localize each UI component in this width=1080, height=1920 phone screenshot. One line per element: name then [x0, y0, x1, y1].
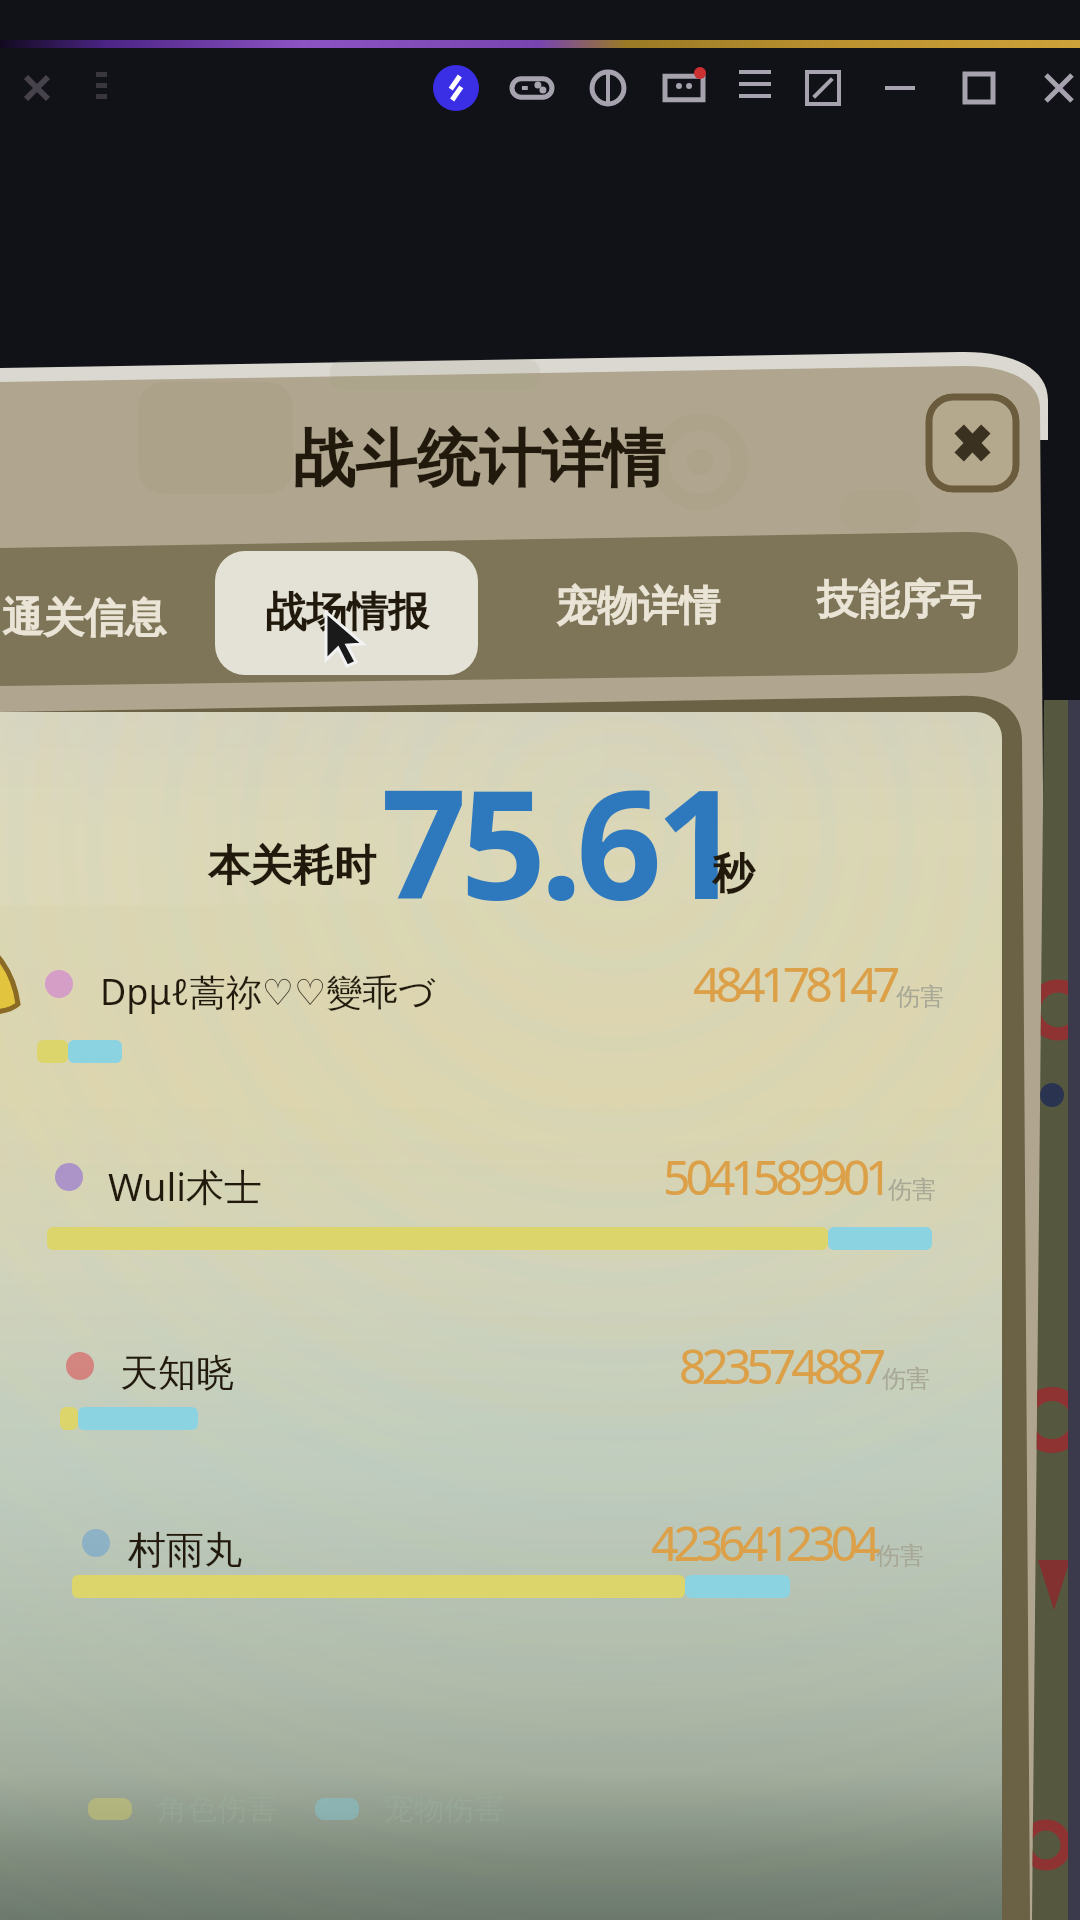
staticText: 823574887 [679, 1333, 882, 1398]
staticText: 伤害 [876, 1541, 924, 1571]
staticText: 5041589901 [663, 1144, 888, 1209]
button[interactable]: 技能序号 [776, 539, 1076, 663]
button[interactable]: 宠物详情 [478, 545, 776, 669]
staticText: 战场情报 [265, 587, 429, 639]
staticText: 技能序号 [817, 575, 981, 627]
staticText: 484178147 [693, 951, 896, 1016]
button[interactable]: 战场情报 [215, 551, 478, 675]
staticText: 宠物伤害 [384, 1790, 504, 1828]
staticText: 伤害 [896, 982, 944, 1012]
staticText: 秒 [712, 848, 754, 901]
button[interactable]: Close [925, 393, 1020, 493]
staticText: 宠物详情 [556, 581, 720, 633]
staticText: 天知晓 [120, 1349, 234, 1397]
staticText: 本关耗时 [208, 840, 376, 893]
staticText: 战斗统计详情 [293, 420, 665, 498]
staticText: 伤害 [882, 1364, 930, 1394]
staticText: 村雨丸 [128, 1526, 242, 1574]
button[interactable]: 通关信息 [0, 557, 215, 681]
staticText: 伤害 [888, 1175, 936, 1205]
staticText: 通关信息 [2, 593, 166, 645]
staticText: Wuli术士 [108, 1160, 263, 1212]
staticText: Dpμℓ蒿祢♡♡變乖づ [100, 967, 436, 1016]
staticText: 75.61 [381, 739, 736, 943]
staticText: 4236412304 [651, 1510, 876, 1575]
staticText: 角色伤害 [157, 1790, 277, 1828]
